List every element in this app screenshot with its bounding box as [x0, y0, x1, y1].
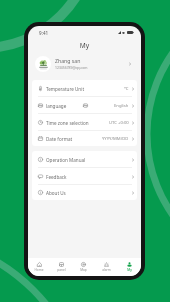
- button[interactable]: panel: [50, 258, 72, 276]
- staticText: English: [114, 103, 129, 109]
- staticText: 123456789@qq.com: [55, 65, 88, 70]
- staticText: 9:41: [39, 30, 49, 36]
- staticText: My: [127, 268, 132, 272]
- staticText: Operation Manual: [46, 157, 86, 163]
- staticText: YYYY/MM/DD: [102, 136, 129, 142]
- other: Open: [131, 191, 135, 195]
- button[interactable]: Date format: [32, 131, 137, 146]
- other: Open: [131, 87, 135, 91]
- button[interactable]: Operation Manual: [32, 151, 137, 168]
- staticText: ℃: [124, 86, 129, 92]
- staticText: Map: [80, 268, 87, 272]
- staticText: Feedback: [46, 174, 67, 180]
- staticText: Date format: [46, 136, 73, 142]
- staticText: Zhang san: [55, 57, 81, 64]
- staticText: Home: [34, 268, 44, 272]
- button[interactable]: language: [32, 97, 137, 114]
- button[interactable]: My: [118, 258, 141, 276]
- staticText: alarm: [102, 268, 111, 272]
- button[interactable]: Feedback: [32, 168, 137, 185]
- staticText: Temperature Unit: [46, 86, 85, 92]
- other: Open: [131, 137, 135, 141]
- button[interactable]: Map: [72, 258, 95, 276]
- staticText: panel: [57, 268, 66, 272]
- staticText: My: [28, 41, 141, 50]
- staticText: UTC +0:00: [109, 120, 129, 126]
- button[interactable]: Home: [28, 258, 50, 276]
- other: Open: [131, 158, 135, 162]
- staticText: About Us: [46, 190, 66, 196]
- other: Open: [128, 62, 132, 66]
- button[interactable]: alarm: [95, 258, 118, 276]
- button[interactable]: Time zone selection: [32, 114, 137, 131]
- staticText: Time zone selection: [46, 120, 89, 126]
- other: Open: [131, 104, 135, 108]
- button[interactable]: About Us: [32, 185, 137, 200]
- other: Open: [131, 175, 135, 179]
- staticText: language: [46, 103, 67, 109]
- button[interactable]: Temperature Unit: [32, 80, 137, 97]
- button[interactable]: Zhang san: [28, 54, 141, 73]
- other: Open: [131, 121, 135, 125]
